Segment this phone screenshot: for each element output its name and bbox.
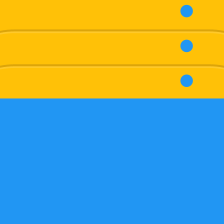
button[interactable]: Item [0, 0, 224, 30]
button[interactable]: Item [0, 30, 224, 65]
button[interactable]: Item [0, 65, 224, 100]
